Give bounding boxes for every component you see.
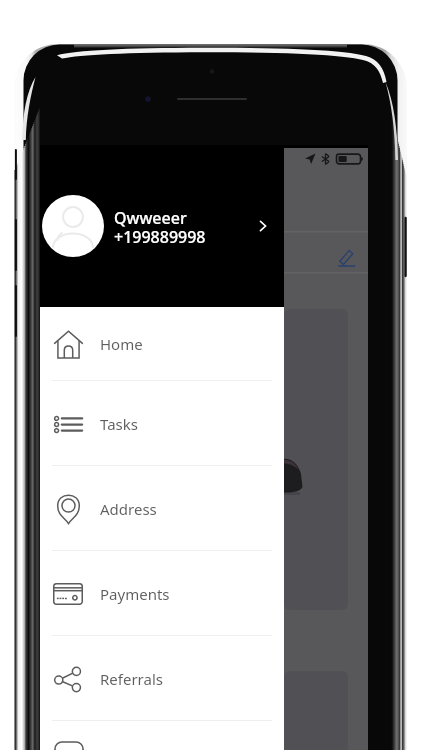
staticText: +199889998 — [114, 226, 206, 248]
staticText: Referrals — [100, 669, 163, 689]
staticText: Home — [100, 334, 143, 354]
button[interactable]: Payments — [40, 551, 284, 636]
staticText: Tasks — [100, 414, 138, 434]
button[interactable]: Qwweeer — [40, 145, 284, 307]
staticText: Payments — [100, 584, 170, 604]
other: Edit — [338, 249, 354, 266]
button[interactable]: Home — [40, 307, 284, 381]
button[interactable]: Address — [40, 466, 284, 551]
button[interactable]: Tasks — [40, 381, 284, 466]
staticText: Qwweeer — [114, 207, 187, 229]
staticText: Address — [100, 499, 157, 519]
button[interactable]: Referrals — [40, 636, 284, 721]
